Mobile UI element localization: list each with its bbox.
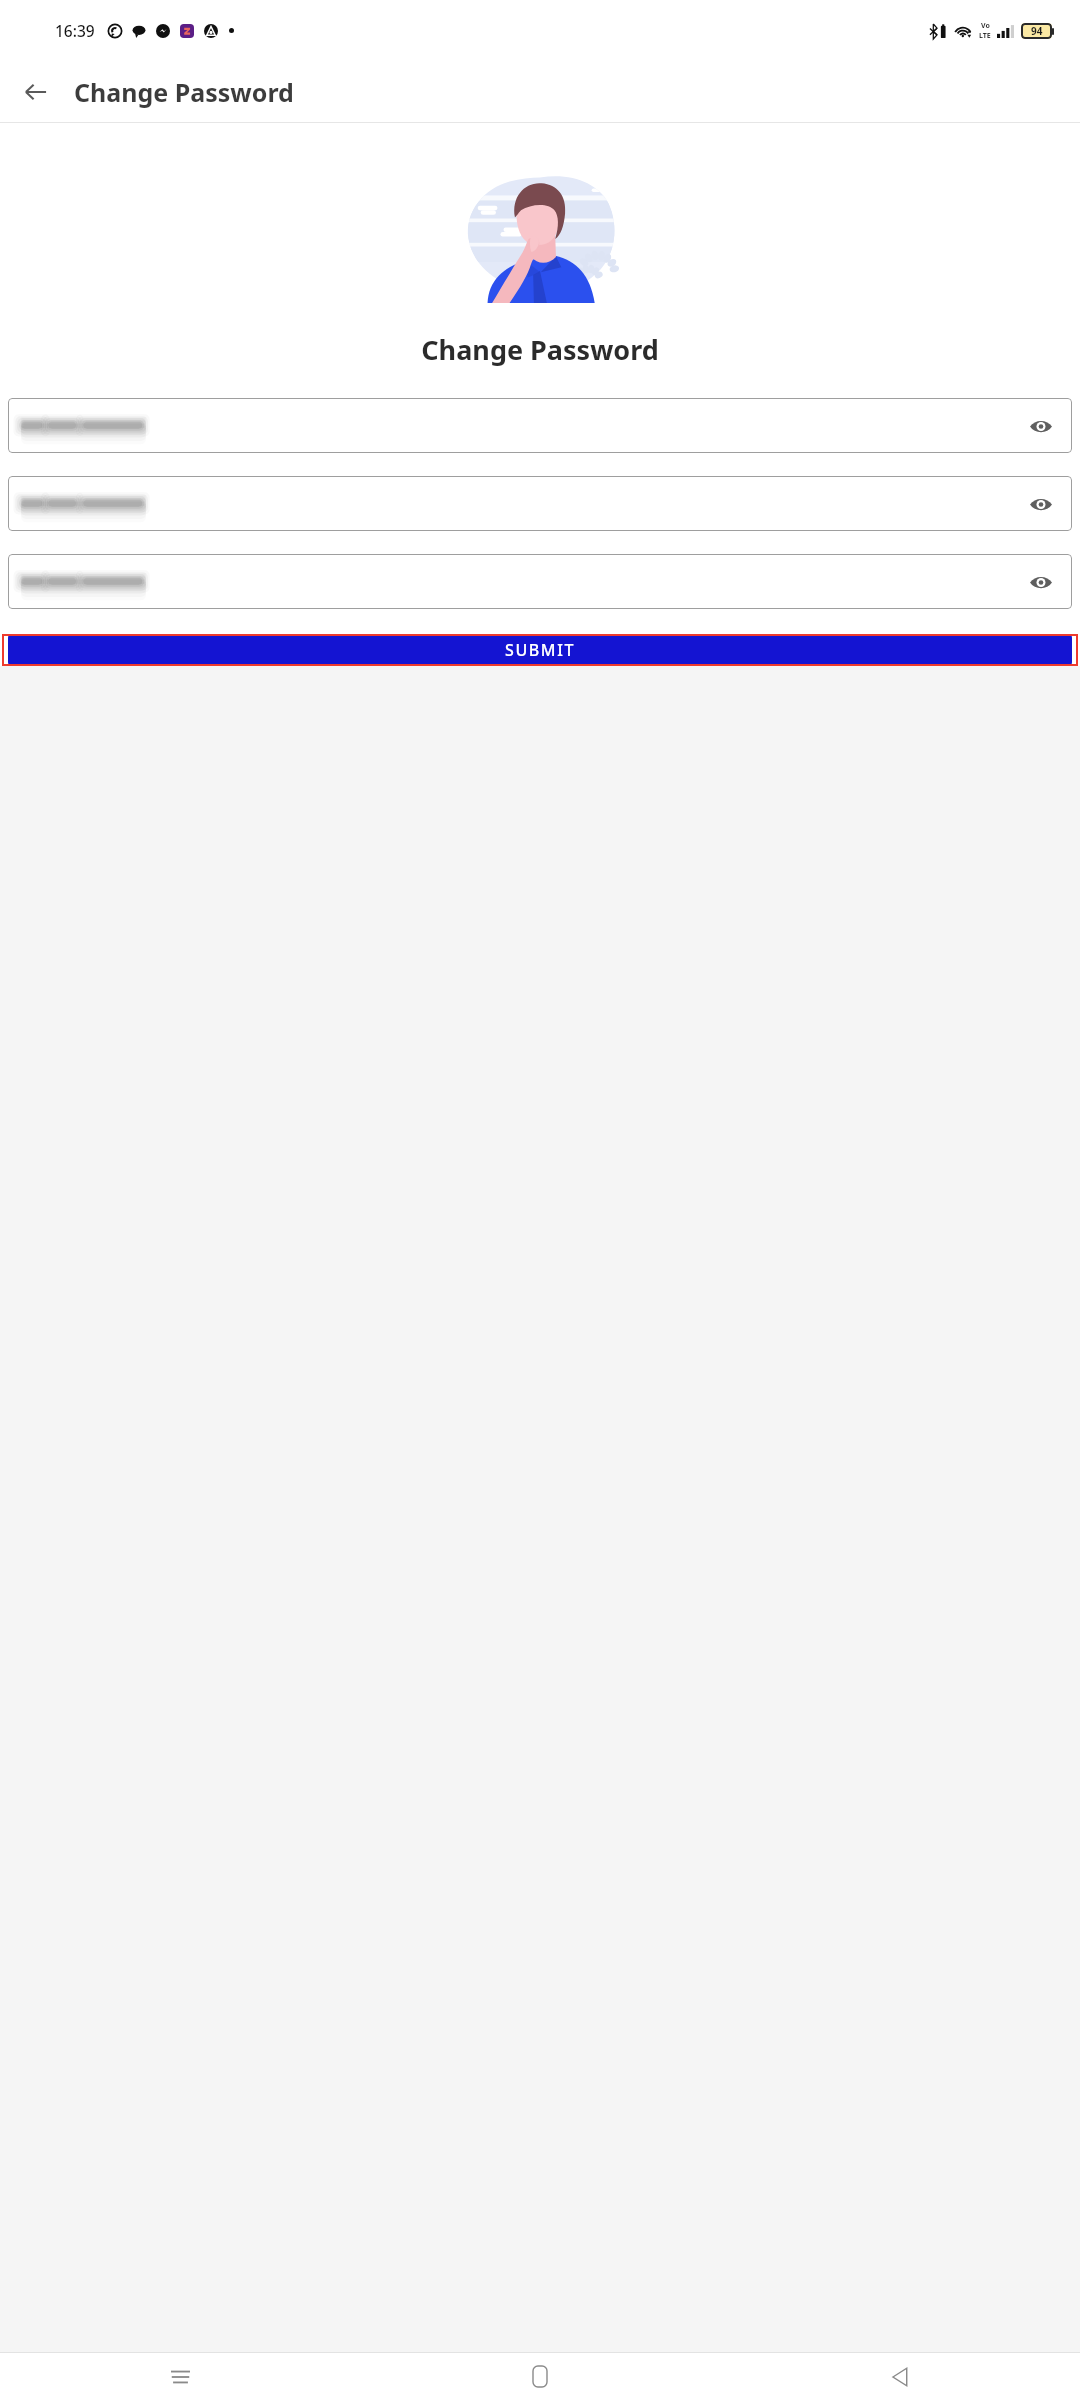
- button[interactable]: Toggle password visibility: [1024, 565, 1058, 599]
- staticText: Change Password: [421, 331, 659, 368]
- staticText: 16:39: [55, 20, 95, 41]
- button[interactable]: Toggle password visibility: [8, 398, 1072, 453]
- staticText: LTE: [979, 31, 991, 41]
- staticText: SUBMIT: [505, 639, 576, 661]
- staticText: Change Password: [74, 75, 294, 109]
- button[interactable]: Toggle password visibility: [8, 554, 1072, 609]
- staticText: 94: [1031, 24, 1043, 38]
- button[interactable]: Home: [360, 2353, 720, 2400]
- staticText: Vo: [981, 21, 990, 31]
- button[interactable]: Back: [720, 2353, 1080, 2400]
- button[interactable]: Back: [8, 64, 64, 120]
- button[interactable]: Recents: [0, 2353, 360, 2400]
- button[interactable]: Toggle password visibility: [1024, 409, 1058, 443]
- button[interactable]: SUBMIT: [8, 634, 1072, 666]
- button[interactable]: Toggle password visibility: [1024, 487, 1058, 521]
- button[interactable]: Toggle password visibility: [8, 476, 1072, 531]
